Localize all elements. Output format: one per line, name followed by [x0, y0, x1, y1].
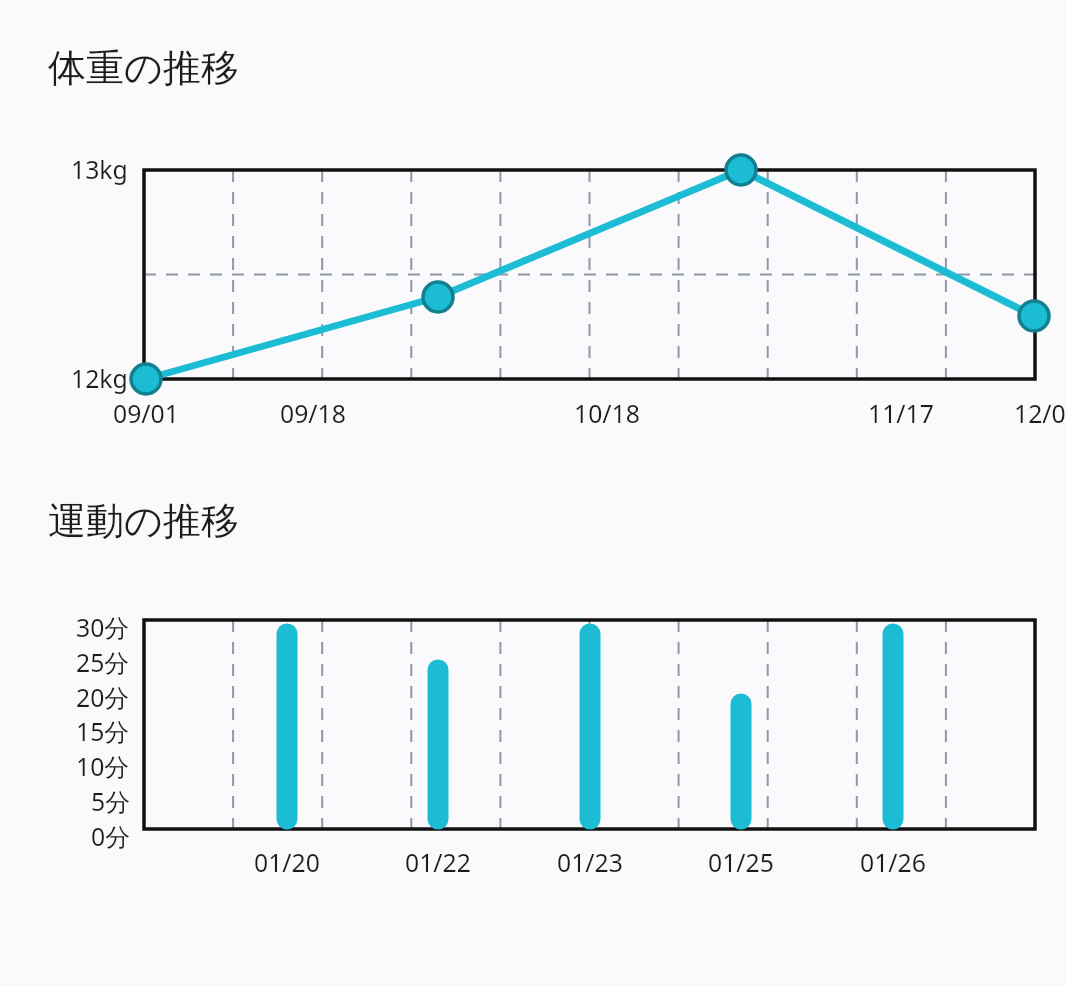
button[interactable]: 体重と運動の推移グラフ [0, 0, 1066, 986]
